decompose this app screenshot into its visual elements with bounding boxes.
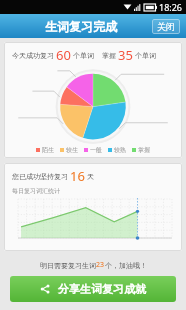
button[interactable]: 分享生词复习成就 xyxy=(10,276,176,302)
staticText: 个单词 xyxy=(135,51,156,60)
staticText: 个，加油哦！ xyxy=(105,261,147,270)
staticText: 分享生词复习成就 xyxy=(58,282,146,296)
staticText: 天 xyxy=(87,172,94,181)
staticText: 个单词 xyxy=(73,51,94,60)
staticText: 生词复习完成 xyxy=(45,19,117,34)
staticText: 每日复习词汇统计 xyxy=(12,187,60,195)
staticText: 一般 xyxy=(90,146,102,154)
staticText: 掌握 xyxy=(102,51,116,60)
staticText: 关闭 xyxy=(157,21,175,32)
staticText: 陌生 xyxy=(42,146,54,154)
staticText: 35 xyxy=(118,46,133,64)
staticText: 您已成功坚持复习 xyxy=(12,172,68,181)
staticText: 60 xyxy=(56,46,71,64)
staticText: 18:26 xyxy=(159,1,183,13)
staticText: 今天成功复习 xyxy=(12,51,54,60)
staticText: 掌握 xyxy=(138,146,150,154)
staticText: 较生 xyxy=(66,146,78,154)
button[interactable]: 关闭 xyxy=(152,19,180,34)
staticText: 较熟 xyxy=(114,146,126,154)
staticText: 16 xyxy=(70,167,85,185)
staticText: 明日需要复习生词 xyxy=(40,261,96,270)
staticText: 23 xyxy=(96,260,105,270)
